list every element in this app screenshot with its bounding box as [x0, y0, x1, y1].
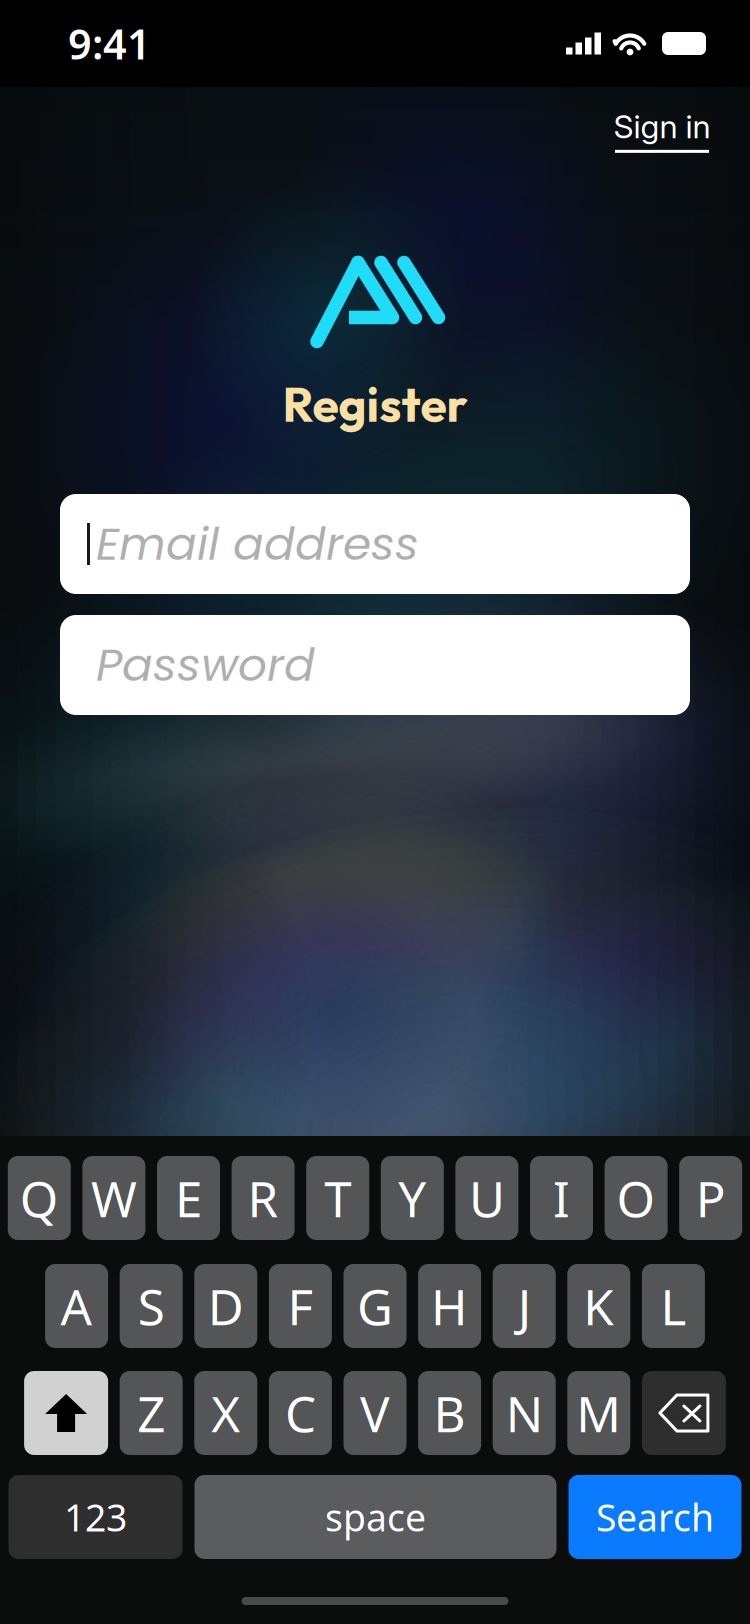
staticText: O — [617, 1165, 656, 1231]
staticText: M — [576, 1380, 621, 1446]
staticText: Q — [20, 1165, 59, 1231]
button[interactable]: N — [493, 1371, 556, 1455]
staticText: J — [518, 1273, 531, 1339]
button[interactable]: T — [306, 1156, 369, 1240]
button[interactable]: Delete — [642, 1371, 726, 1455]
button[interactable]: Sign in — [613, 107, 710, 153]
button[interactable]: P — [679, 1156, 742, 1240]
staticText: R — [248, 1165, 279, 1231]
button[interactable]: X — [194, 1371, 257, 1455]
button[interactable]: V — [343, 1371, 406, 1455]
staticText: 9:41 — [68, 16, 151, 71]
staticText: Password — [96, 633, 315, 697]
button[interactable]: O — [605, 1156, 668, 1240]
staticText: Search — [596, 1492, 714, 1542]
staticText: F — [287, 1273, 313, 1339]
staticText: Sign in — [613, 107, 710, 146]
button[interactable]: F — [269, 1264, 332, 1348]
staticText: A — [61, 1273, 93, 1339]
button[interactable]: H — [418, 1264, 481, 1348]
button[interactable]: M — [567, 1371, 630, 1455]
staticText: D — [208, 1273, 244, 1339]
staticText: Z — [137, 1380, 165, 1446]
staticText: space — [325, 1492, 426, 1542]
staticText: Y — [398, 1165, 426, 1231]
staticText: K — [583, 1273, 614, 1339]
staticText: L — [660, 1273, 686, 1339]
button[interactable]: J — [493, 1264, 556, 1348]
staticText: I — [553, 1165, 570, 1231]
staticText: X — [211, 1380, 240, 1446]
staticText: E — [175, 1165, 202, 1231]
staticText: P — [696, 1165, 726, 1231]
button[interactable]: Shift — [24, 1371, 108, 1455]
staticText: S — [138, 1273, 165, 1339]
button[interactable]: L — [642, 1264, 705, 1348]
button[interactable]: W — [82, 1156, 145, 1240]
staticText: G — [357, 1273, 393, 1339]
staticText: W — [91, 1165, 137, 1231]
staticText: H — [431, 1273, 468, 1339]
staticText: Register — [282, 374, 467, 434]
button[interactable]: A — [45, 1264, 108, 1348]
button[interactable]: Password — [60, 615, 690, 715]
button[interactable]: D — [194, 1264, 257, 1348]
staticText: Email address — [96, 512, 419, 576]
button[interactable]: E — [157, 1156, 220, 1240]
button[interactable]: I — [530, 1156, 593, 1240]
staticText: T — [324, 1165, 351, 1231]
button[interactable]: Q — [8, 1156, 71, 1240]
staticText: C — [285, 1380, 316, 1446]
staticText: V — [360, 1380, 390, 1446]
staticText: U — [469, 1165, 505, 1231]
button[interactable]: 123 — [8, 1475, 182, 1559]
staticText: N — [506, 1380, 543, 1446]
button[interactable]: C — [269, 1371, 332, 1455]
staticText: B — [434, 1380, 466, 1446]
button[interactable]: U — [455, 1156, 518, 1240]
button[interactable]: Search — [568, 1475, 741, 1559]
button[interactable]: S — [120, 1264, 183, 1348]
button[interactable]: space — [194, 1475, 556, 1559]
button[interactable]: Email address — [60, 494, 690, 594]
staticText: 123 — [64, 1492, 127, 1542]
button[interactable]: Z — [120, 1371, 183, 1455]
button[interactable]: K — [567, 1264, 630, 1348]
button[interactable]: G — [343, 1264, 406, 1348]
button[interactable]: Y — [381, 1156, 444, 1240]
button[interactable]: R — [232, 1156, 295, 1240]
button[interactable]: B — [418, 1371, 481, 1455]
